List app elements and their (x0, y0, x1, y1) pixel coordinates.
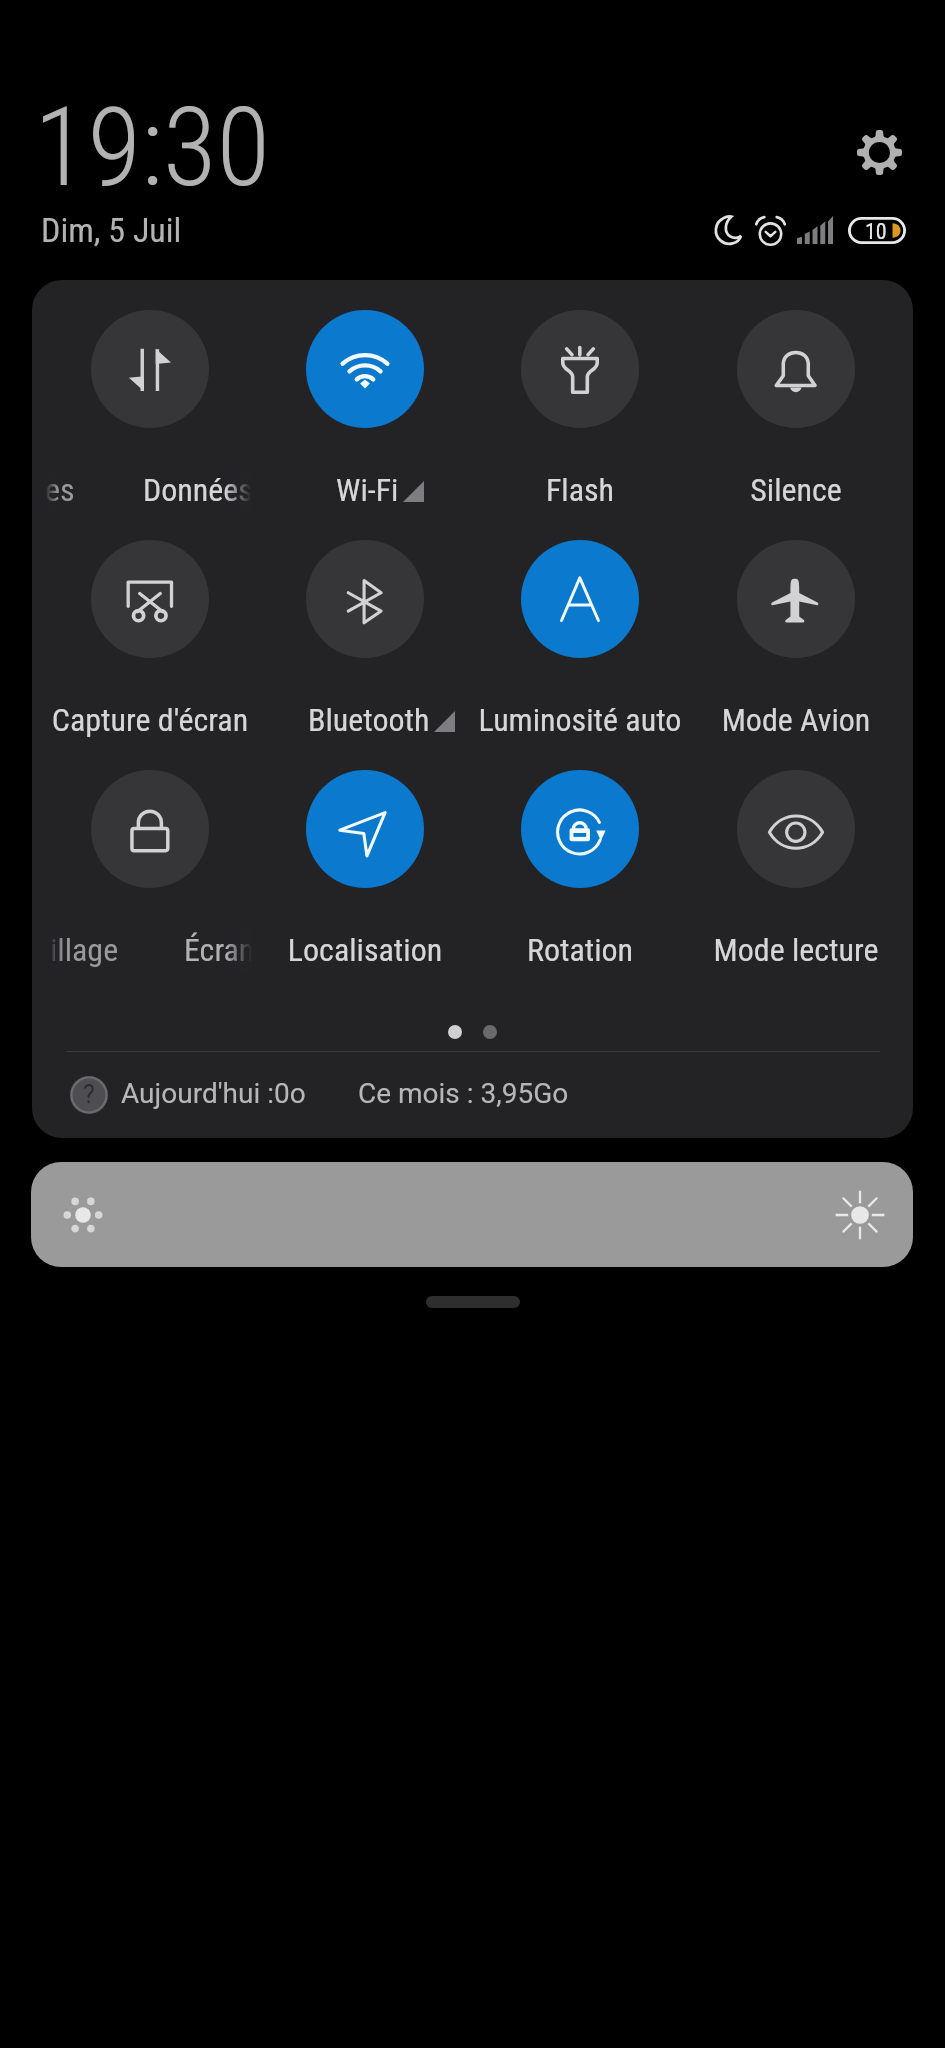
button[interactable]: Wi-Fi (258, 310, 472, 500)
button[interactable]: Luminosité auto (473, 540, 687, 730)
staticText: Rotation (360, 931, 800, 969)
staticText: Dim, 5 Juil (41, 210, 182, 250)
staticText: Capture d'écran (0, 701, 370, 739)
staticText: Mode Avion (576, 701, 945, 739)
button[interactable]: Mode lecture (689, 770, 903, 960)
button[interactable]: Écran (43, 770, 257, 960)
staticText: Flash (360, 471, 800, 509)
staticText: es (45, 471, 75, 509)
staticText: Wi-Fi (336, 471, 399, 509)
button[interactable]: Settings (847, 120, 911, 184)
staticText: illage (50, 931, 119, 969)
button[interactable]: Brightness (31, 1162, 913, 1267)
button[interactable]: Localisation (258, 770, 472, 960)
button[interactable]: Silence (689, 310, 903, 500)
staticText: Bluetooth (308, 701, 430, 739)
button[interactable]: Capture d'écran (43, 540, 257, 730)
staticText: Silence (576, 471, 945, 509)
staticText: 19:30 (34, 83, 270, 212)
button[interactable]: Bluetooth (258, 540, 472, 730)
button[interactable]: Mode Avion (689, 540, 903, 730)
button[interactable]: Données (43, 310, 257, 500)
staticText: Aujourd'hui :0o (121, 1077, 306, 1110)
staticText: Luminosité auto (360, 701, 800, 739)
button[interactable]: Flash (473, 310, 687, 500)
staticText: Mode lecture (576, 931, 945, 969)
staticText: Localisation (145, 931, 585, 969)
staticText: 10 (865, 219, 887, 245)
staticText: Données (143, 471, 251, 509)
staticText: ? (83, 1080, 95, 1109)
staticText: Ce mois : 3,95Go (358, 1077, 569, 1110)
staticText: Écran (184, 931, 252, 969)
button[interactable]: Rotation (473, 770, 687, 960)
